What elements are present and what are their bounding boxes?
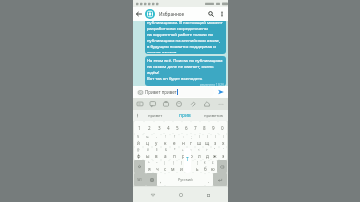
staticText: ц — [146, 140, 149, 146]
staticText: а — [164, 153, 167, 159]
staticText: 4 — [167, 125, 170, 131]
button[interactable]: / — [211, 134, 219, 147]
staticText: э — [222, 153, 225, 159]
button[interactable]: @ — [134, 147, 143, 160]
button[interactable]: % — [134, 134, 143, 147]
button[interactable]: 2 — [144, 121, 154, 134]
button[interactable]: * — [170, 147, 179, 160]
button[interactable]: ? — [170, 134, 179, 147]
button[interactable]: Enter — [213, 173, 227, 186]
button[interactable]: ' — [219, 147, 227, 160]
button[interactable]: > — [203, 147, 211, 160]
staticText: > — [206, 148, 208, 152]
button[interactable]: ] — [193, 160, 201, 173]
button[interactable]: 4 — [164, 121, 173, 134]
button[interactable]: Backspace — [217, 160, 227, 173]
staticText: м — [171, 166, 175, 172]
staticText: 9 — [212, 125, 215, 131]
staticText: прив — [179, 112, 191, 119]
button[interactable]: ~ — [153, 160, 161, 173]
staticText: & — [165, 148, 167, 152]
button[interactable]: Keyboard settings — [146, 173, 157, 186]
button[interactable]: | — [161, 160, 169, 173]
button[interactable]: № — [143, 134, 152, 147]
button[interactable]: , — [157, 173, 165, 186]
staticText: ~ — [156, 161, 158, 165]
button[interactable]: More options — [217, 7, 227, 21]
button[interactable]: Shift — [134, 160, 145, 173]
button[interactable]: 8 — [200, 121, 209, 134]
button[interactable]: прив — [170, 110, 199, 121]
staticText: ) — [207, 135, 208, 139]
button[interactable]: 6 — [182, 121, 191, 134]
button[interactable]: Home — [174, 188, 188, 202]
button[interactable]: Привет привет — [135, 87, 214, 97]
staticText: : — [183, 135, 184, 139]
button[interactable]: \ — [219, 134, 227, 147]
button[interactable]: [ — [185, 160, 193, 173]
staticText: приветик — [204, 113, 224, 119]
button[interactable]: ) — [203, 134, 211, 147]
staticText: ю — [211, 166, 215, 172]
button[interactable]: 9 — [209, 121, 218, 134]
button[interactable]: Gallery — [159, 98, 172, 110]
staticText: изменено 13:26 — [147, 83, 224, 86]
button[interactable]: $ — [152, 147, 161, 160]
button[interactable]: . — [205, 173, 213, 186]
button[interactable]: На этом всё. Поиска по публикациям на са… — [145, 56, 226, 86]
button[interactable]: ; — [187, 134, 195, 147]
staticText: у — [155, 140, 158, 146]
button[interactable]: " — [211, 147, 219, 160]
staticText: публикациями. В настоящий момент разрабо… — [147, 21, 223, 53]
button[interactable]: 1 — [134, 121, 144, 134]
button[interactable]: { — [169, 160, 177, 173]
staticText: к — [164, 140, 167, 146]
staticText: Т — [184, 156, 191, 163]
staticText: и — [180, 166, 183, 172]
button[interactable]: Back — [133, 7, 145, 21]
button[interactable]: Attach — [186, 98, 200, 110]
button[interactable]: : — [179, 134, 187, 147]
button[interactable]: 5 — [173, 121, 182, 134]
button[interactable]: Gif — [146, 98, 159, 110]
button[interactable]: публикациями. В настоящий момент разрабо… — [145, 21, 226, 54]
button[interactable]: Recent apps — [201, 188, 215, 202]
button[interactable]: & — [161, 147, 170, 160]
button[interactable]: Send — [215, 86, 227, 98]
button[interactable]: Location — [200, 98, 214, 110]
button[interactable]: Keyboard settings — [133, 110, 141, 121]
staticText: й — [137, 140, 140, 146]
staticText: ы — [146, 153, 150, 159]
staticText: 5 — [176, 125, 179, 131]
button[interactable]: приветик — [199, 110, 228, 121]
button[interactable]: More — [214, 98, 228, 110]
button[interactable]: } — [177, 160, 185, 173]
button[interactable]: Symbols — [134, 173, 146, 186]
button[interactable]: Русский — [165, 173, 205, 186]
button[interactable]: < — [195, 147, 203, 160]
button[interactable]: = — [187, 147, 195, 160]
staticText: х — [222, 140, 225, 146]
button[interactable]: + — [179, 147, 187, 160]
button[interactable]: 0 — [218, 121, 227, 134]
button[interactable]: - — [152, 134, 161, 147]
button[interactable]: Emoji — [172, 98, 186, 110]
button[interactable]: Избранное — [159, 11, 185, 17]
button[interactable]: ( — [195, 134, 203, 147]
staticText: € — [204, 161, 206, 165]
button[interactable]: ! — [161, 134, 170, 147]
button[interactable]: Sticker — [133, 98, 146, 110]
button[interactable]: Back — [146, 188, 160, 202]
button[interactable]: привет — [141, 110, 170, 121]
button[interactable]: 7 — [191, 121, 200, 134]
button[interactable]: Search — [205, 7, 217, 21]
button[interactable]: € — [201, 160, 209, 173]
button[interactable]: Avatar — [145, 9, 155, 19]
button[interactable]: ^ — [145, 160, 153, 173]
button[interactable]: £ — [209, 160, 217, 173]
staticText: н — [182, 140, 185, 146]
button[interactable]: 3 — [154, 121, 164, 134]
button[interactable]: # — [143, 147, 152, 160]
staticText: ш — [197, 140, 202, 146]
staticText: + — [182, 148, 184, 152]
